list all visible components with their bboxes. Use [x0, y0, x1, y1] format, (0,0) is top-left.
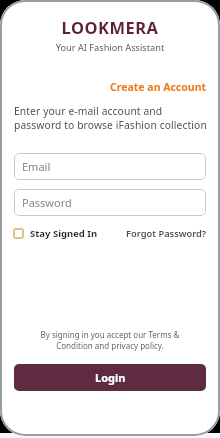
staticText: Your AI Fashion Assistant — [0, 41, 220, 54]
staticText: LOOKMERA — [0, 16, 220, 38]
staticText: Email — [22, 159, 51, 174]
staticText: By signing in you accept our Terms & Con… — [0, 329, 220, 351]
staticText: Enter your e-mail account and password t… — [14, 104, 207, 132]
staticText: Stay Signed In — [30, 227, 98, 240]
button[interactable]: Stay Signed In — [13, 227, 98, 240]
button[interactable]: Email — [14, 153, 206, 180]
staticText: Password — [22, 195, 72, 210]
button[interactable]: Login — [14, 364, 206, 391]
button[interactable]: Forgot Password? — [126, 227, 207, 240]
button[interactable]: Password — [14, 189, 206, 216]
staticText: Login — [95, 370, 126, 385]
button[interactable]: Create an Account — [110, 80, 207, 94]
